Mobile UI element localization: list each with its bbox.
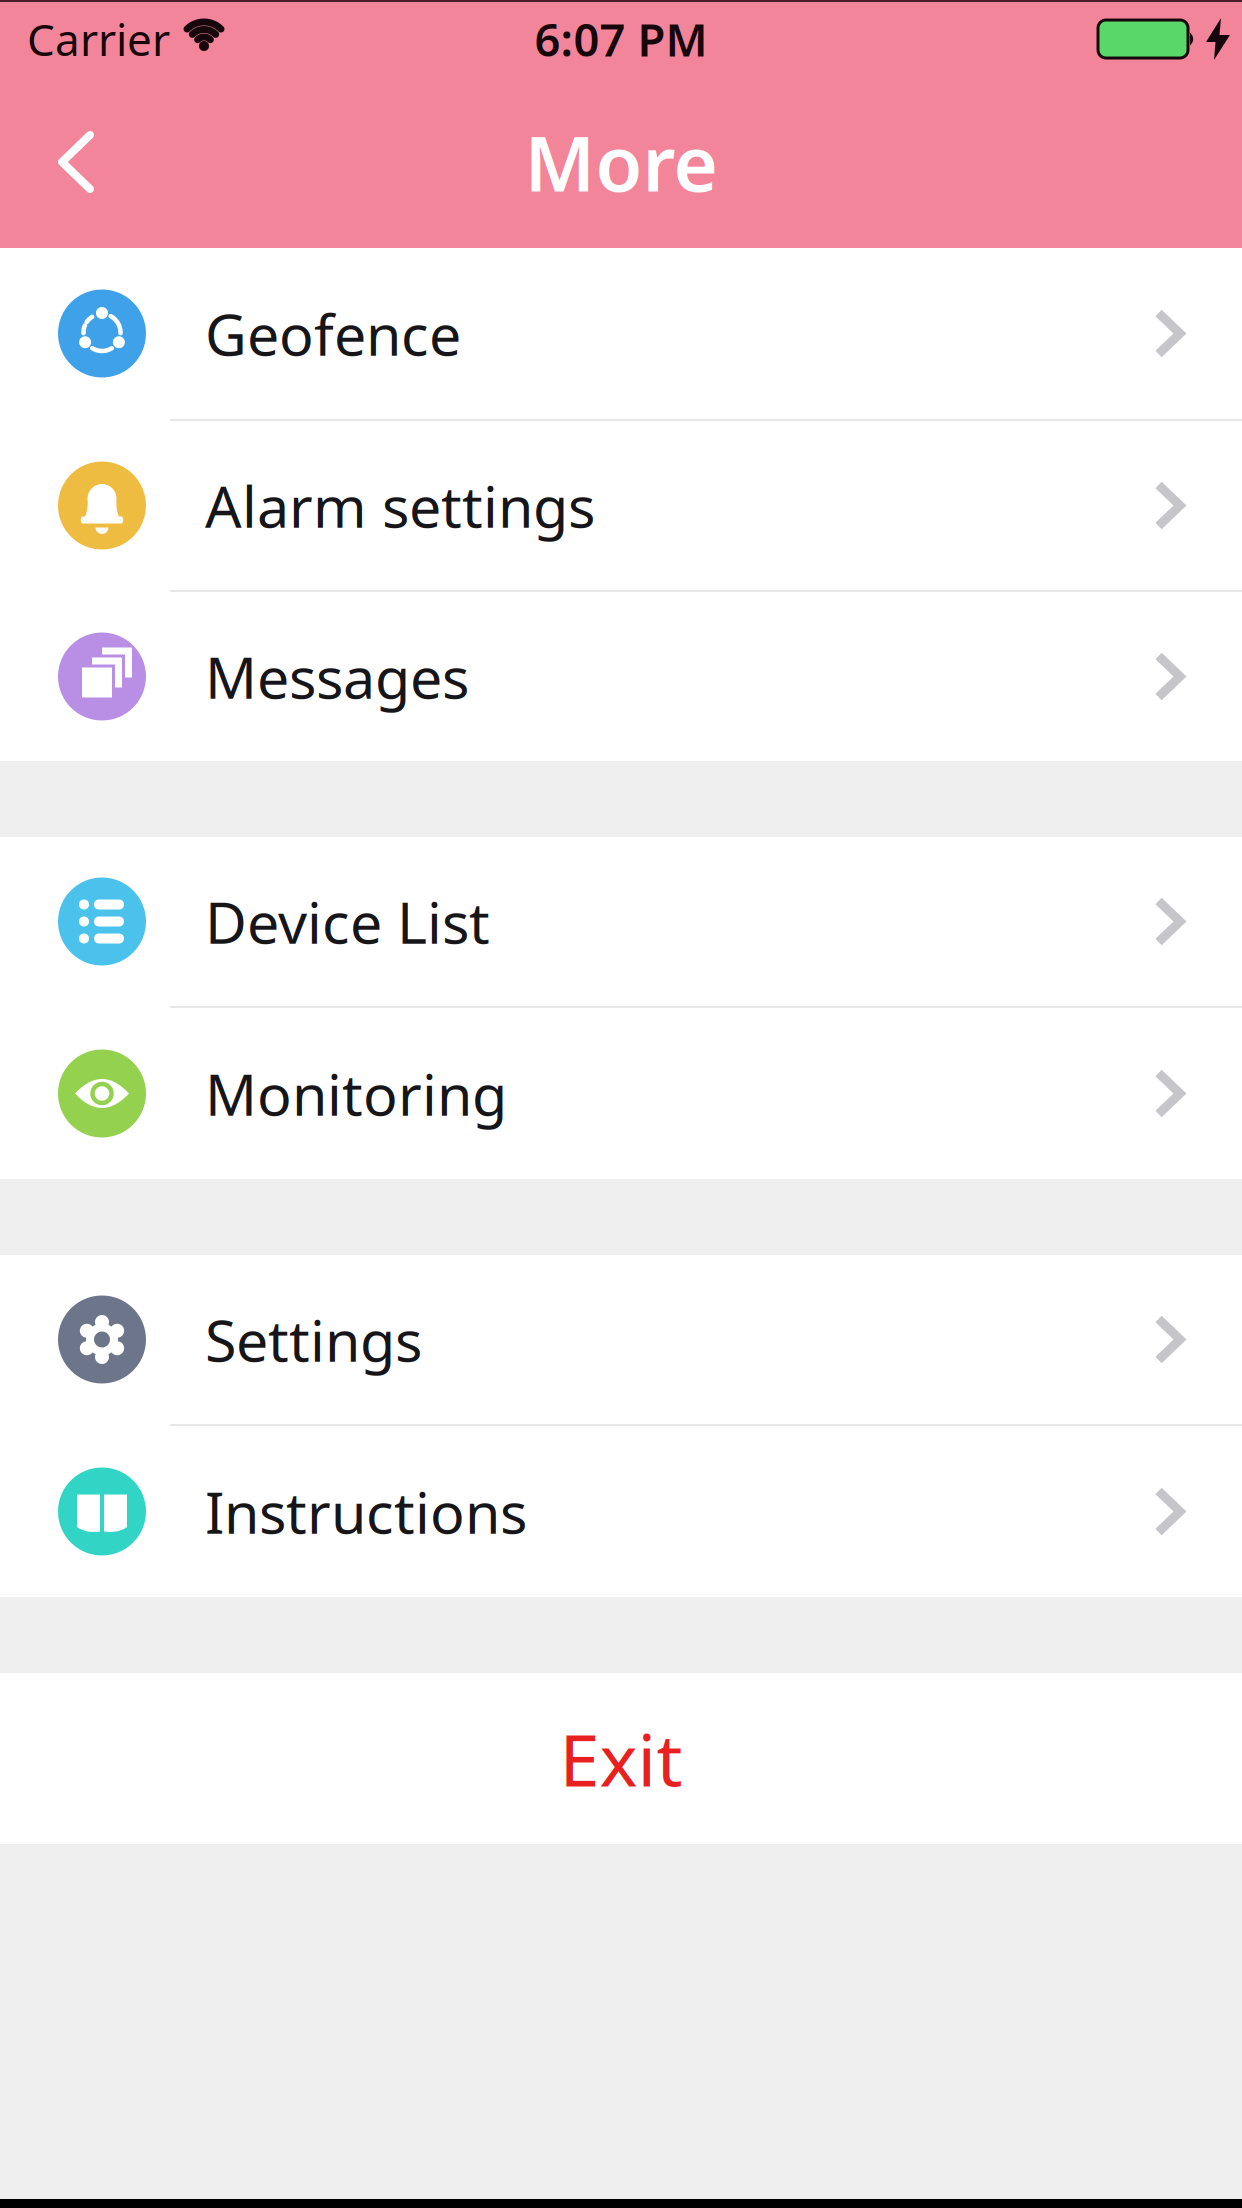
staticText: Exit: [559, 1711, 682, 1806]
button[interactable]: Monitoring: [0, 1008, 1242, 1179]
staticText: Settings: [205, 1301, 422, 1377]
staticText: Messages: [205, 638, 469, 714]
staticText: Carrier: [27, 10, 170, 68]
staticText: 6:07 PM: [534, 9, 707, 69]
staticText: Device List: [205, 883, 490, 959]
staticText: Monitoring: [205, 1055, 507, 1131]
button[interactable]: Settings: [0, 1255, 1242, 1424]
button[interactable]: Geofence: [0, 248, 1242, 419]
button[interactable]: Device List: [0, 837, 1242, 1006]
button[interactable]: Instructions: [0, 1426, 1242, 1597]
button[interactable]: Messages: [0, 592, 1242, 761]
staticText: Alarm settings: [205, 467, 595, 543]
button[interactable]: Alarm settings: [0, 421, 1242, 590]
button[interactable]: Exit: [0, 1673, 1242, 1844]
staticText: More: [524, 111, 717, 212]
staticText: Instructions: [205, 1473, 527, 1549]
staticText: Geofence: [205, 295, 461, 371]
button[interactable]: Back: [0, 121, 94, 203]
